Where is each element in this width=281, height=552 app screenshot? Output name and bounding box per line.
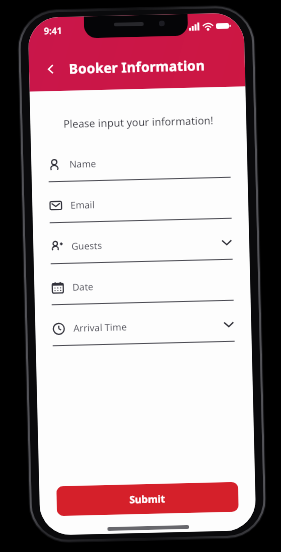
staticText: Submit xyxy=(129,491,166,506)
staticText: Guests xyxy=(71,239,102,253)
staticText: Date xyxy=(72,280,94,294)
button[interactable]: Date xyxy=(51,272,234,305)
button[interactable]: Email xyxy=(49,190,232,223)
staticText: Name xyxy=(69,157,96,171)
staticText: Booker Information xyxy=(69,56,205,78)
button[interactable]: Arrival Time xyxy=(52,313,235,346)
button[interactable]: Submit xyxy=(56,482,239,516)
staticText: Arrival Time xyxy=(73,320,127,335)
staticText: 9:41 xyxy=(44,24,62,36)
staticText: Please input your information! xyxy=(47,113,229,131)
button[interactable]: Back xyxy=(37,55,65,83)
button[interactable]: Name xyxy=(48,149,231,182)
staticText: Email xyxy=(70,198,95,212)
button[interactable]: Guests xyxy=(50,231,233,264)
